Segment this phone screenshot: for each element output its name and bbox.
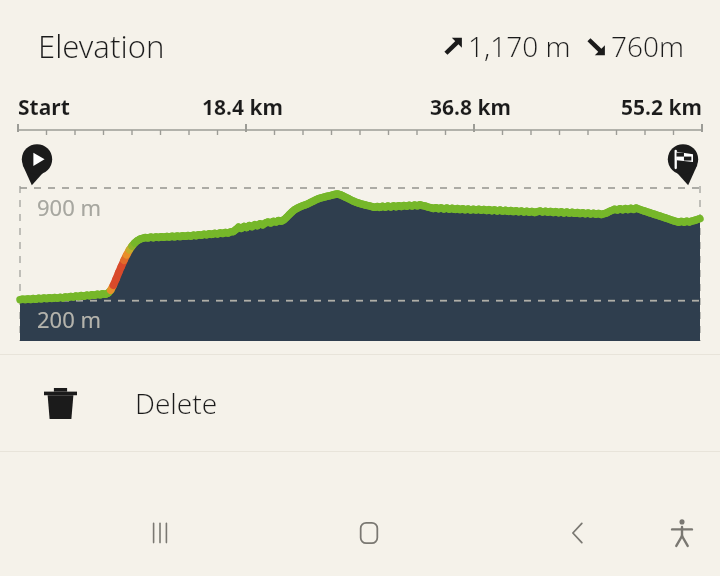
staticText: 900 m xyxy=(37,192,102,222)
staticText: Elevation xyxy=(38,25,165,67)
staticText: 36.8 km xyxy=(430,93,511,122)
button[interactable]: Accessibility xyxy=(650,501,714,565)
staticText: Start xyxy=(18,93,70,122)
staticText: 200 m xyxy=(37,304,102,334)
button[interactable]: Back xyxy=(546,501,610,565)
button[interactable]: Delete xyxy=(0,355,720,451)
button[interactable]: Home xyxy=(337,501,401,565)
staticText: 1,170 m xyxy=(468,27,571,65)
staticText: Delete xyxy=(135,384,218,422)
button[interactable]: Route start xyxy=(14,140,60,186)
staticText: 55.2 km xyxy=(621,93,702,122)
staticText: 18.4 km xyxy=(202,93,283,122)
staticText: 760m xyxy=(611,27,684,65)
button[interactable]: Recent apps xyxy=(128,501,192,565)
button[interactable]: Route finish xyxy=(660,140,706,186)
